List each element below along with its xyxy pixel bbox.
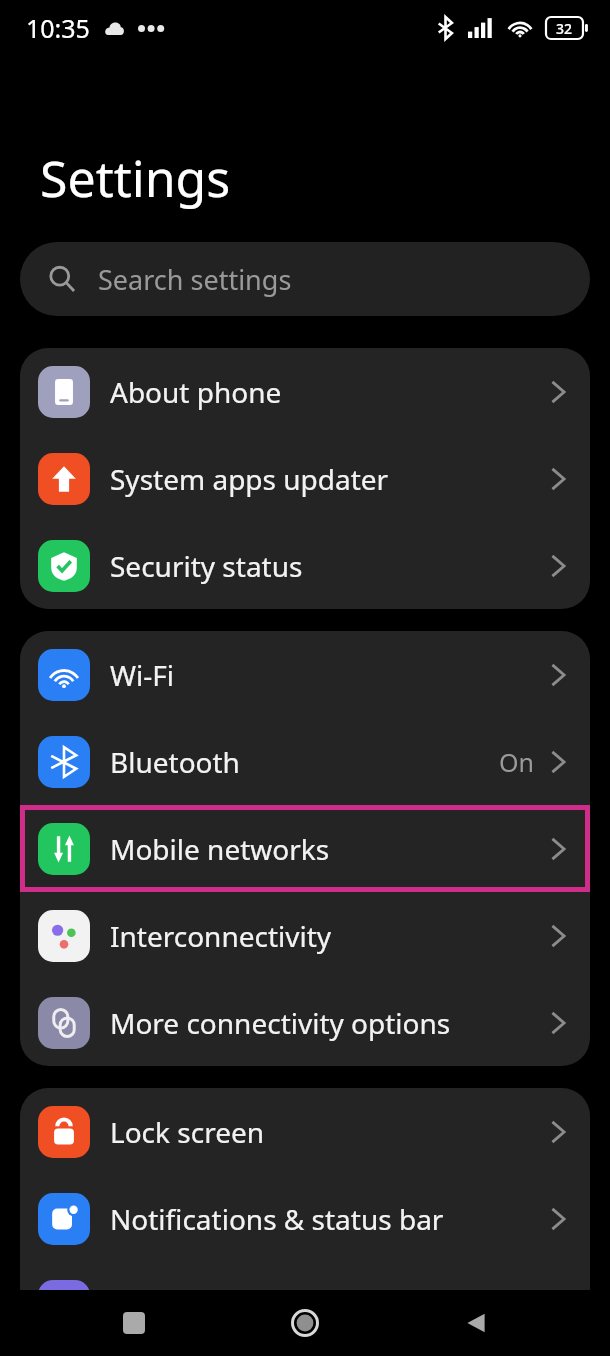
button[interactable]: Bluetooth [20,718,590,805]
button[interactable]: Security status [20,522,590,609]
staticText: Lock screen [110,1113,550,1151]
staticText: About phone [110,373,550,411]
button[interactable]: Home [268,1290,342,1356]
button[interactable]: Home screen [20,1262,590,1349]
staticText: On [499,745,534,779]
button[interactable]: Mobile networks [20,805,590,892]
button[interactable]: Back [439,1290,513,1356]
staticText: 10:35 [26,11,90,45]
staticText: 32 [556,19,573,38]
staticText: Bluetooth [110,743,499,781]
staticText: Interconnectivity [110,917,550,955]
staticText: Notifications & status bar [110,1200,550,1238]
button[interactable]: More connectivity options [20,979,590,1066]
button[interactable]: Wi-Fi [20,631,590,718]
staticText: Settings [40,144,231,212]
staticText: More connectivity options [110,1004,550,1042]
staticText: Search settings [98,261,292,298]
button[interactable]: Interconnectivity [20,892,590,979]
staticText: System apps updater [110,460,550,498]
staticText: Mobile networks [110,830,550,868]
button[interactable]: About phone [20,348,590,435]
button[interactable]: Recent apps [97,1290,171,1356]
staticText: Security status [110,547,550,585]
button[interactable]: Lock screen [20,1088,590,1175]
button[interactable]: System apps updater [20,435,590,522]
staticText: Home screen [110,1287,550,1325]
staticText: Wi-Fi [110,656,550,694]
button[interactable]: Notifications & status bar [20,1175,590,1262]
button[interactable]: Search settings [20,242,590,316]
